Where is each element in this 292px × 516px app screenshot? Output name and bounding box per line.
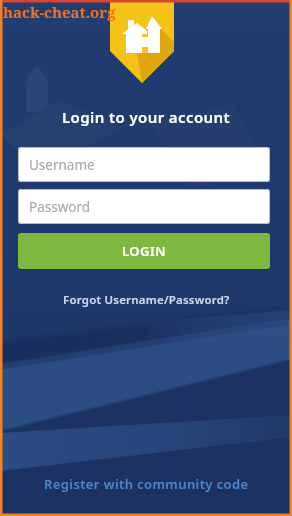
staticText: LOGIN bbox=[122, 242, 167, 260]
button[interactable]: Password bbox=[18, 189, 270, 224]
button[interactable]: Username bbox=[18, 147, 270, 182]
staticText: Register with community code bbox=[44, 475, 249, 493]
staticText: hack-cheat.org bbox=[3, 2, 116, 22]
button[interactable]: Register with community code bbox=[0, 474, 292, 494]
staticText: Password bbox=[29, 198, 91, 216]
staticText: Username bbox=[29, 156, 95, 174]
staticText: Forgot Username/Password? bbox=[63, 292, 230, 308]
staticText: Login to your account bbox=[62, 107, 230, 127]
button[interactable]: Forgot Username/Password? bbox=[0, 291, 292, 309]
button[interactable]: LOGIN bbox=[18, 233, 270, 269]
